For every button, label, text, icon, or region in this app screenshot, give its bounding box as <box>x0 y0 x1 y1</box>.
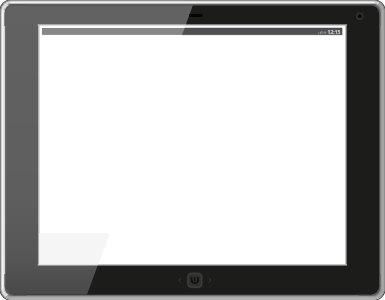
button[interactable]: Tablet device <box>0 0 385 300</box>
